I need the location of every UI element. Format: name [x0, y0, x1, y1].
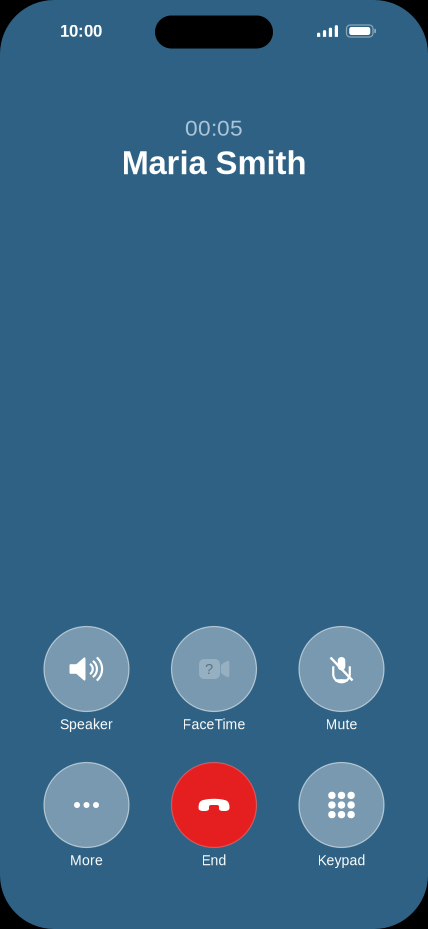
staticText: FaceTime	[182, 717, 245, 732]
staticText: More	[70, 853, 103, 868]
staticText: End	[201, 853, 226, 868]
button[interactable]: End	[152, 762, 276, 870]
staticText: 10:00	[60, 22, 102, 40]
staticText: Speaker	[60, 717, 113, 732]
button[interactable]: Speaker	[24, 626, 148, 734]
button[interactable]: ?	[152, 626, 276, 734]
button[interactable]: Mute	[279, 626, 403, 734]
button[interactable]: Keypad	[279, 762, 403, 870]
staticText: Maria Smith	[121, 145, 306, 181]
staticText: 00:05	[185, 115, 243, 141]
staticText: Keypad	[317, 853, 365, 868]
button[interactable]: More	[24, 762, 148, 870]
staticText: ?	[205, 661, 213, 677]
staticText: Mute	[325, 717, 357, 732]
